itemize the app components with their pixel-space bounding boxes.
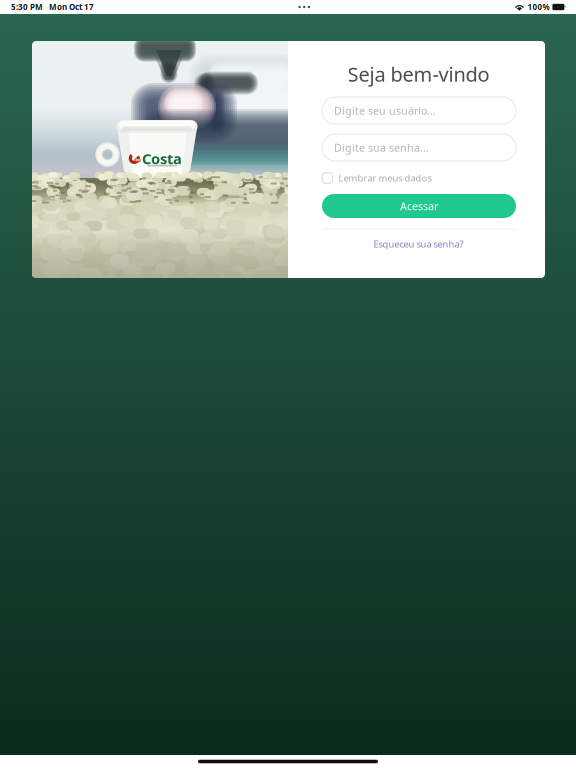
staticText: Digite sua senha... — [334, 140, 429, 155]
staticText: Costa — [142, 149, 182, 168]
staticText: Esqueceu sua senha? — [373, 238, 463, 250]
staticText: 100% — [527, 2, 549, 12]
staticText: Acessar — [400, 199, 438, 213]
staticText: Mon Oct 17 — [49, 2, 94, 12]
button[interactable]: Acessar — [322, 194, 516, 218]
staticText: Seja bem-vindo — [347, 61, 489, 87]
button[interactable]: Digite seu usuário... — [322, 97, 516, 124]
staticText: Lembrar meus dados — [338, 172, 431, 184]
staticText: 5:30 PM — [11, 2, 43, 12]
button[interactable]: Esqueceu sua senha? — [373, 238, 463, 250]
staticText: Digite seu usuário... — [334, 103, 436, 118]
button[interactable]: Digite sua senha... — [322, 134, 516, 161]
button[interactable]: Lembrar meus dados — [322, 171, 516, 185]
